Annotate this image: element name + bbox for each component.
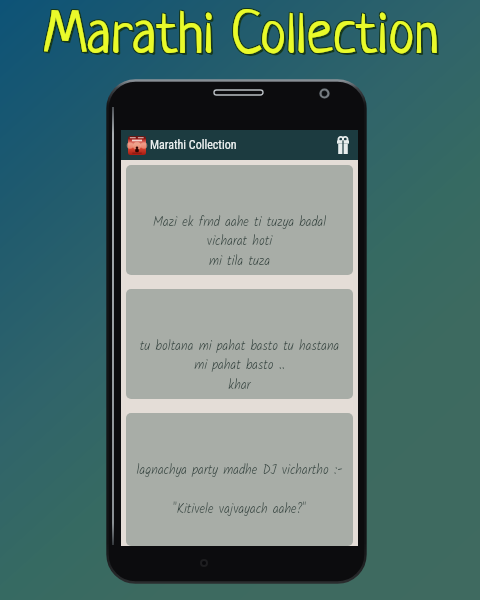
- staticText: Marathi Collection: [44, 6, 440, 62]
- staticText: Marathi Collection: [45, 5, 441, 61]
- staticText: Marathi Collection: [150, 138, 237, 152]
- staticText: Marathi Collection: [43, 7, 439, 63]
- staticText: tu boltana mi pahat basto tu hastana mi …: [126, 336, 353, 396]
- button[interactable]: tu boltana mi pahat basto tu hastana mi …: [126, 289, 353, 399]
- staticText: Marathi Collection: [44, 7, 440, 63]
- staticText: Marathi Collection: [45, 6, 441, 62]
- staticText: Mazi ek frnd aahe ti tuzya badal vichara…: [126, 212, 353, 272]
- staticText: lagnachya party madhe DJ vichartho :- "K…: [126, 460, 353, 520]
- button[interactable]: Mazi ek frnd aahe ti tuzya badal vichara…: [126, 165, 353, 275]
- button[interactable]: Gift: [330, 130, 356, 160]
- button[interactable]: lagnachya party madhe DJ vichartho :- "K…: [126, 413, 353, 546]
- staticText: Marathi Collection: [44, 5, 440, 61]
- staticText: Marathi Collection: [45, 7, 441, 63]
- staticText: Marathi Collection: [43, 5, 439, 61]
- staticText: Marathi Collection: [46, 8, 442, 64]
- staticText: Marathi Collection: [43, 6, 439, 62]
